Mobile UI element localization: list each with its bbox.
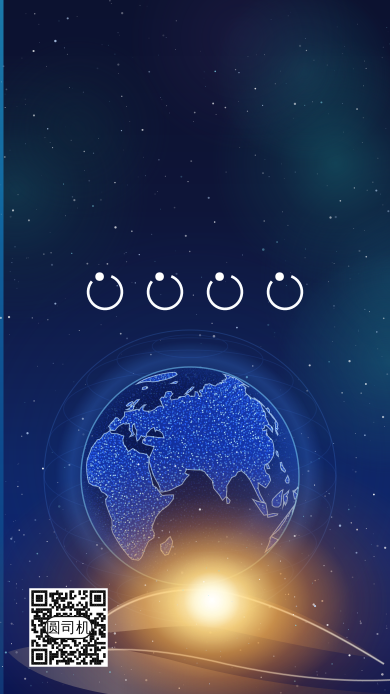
button[interactable]: Loading (86, 273, 123, 310)
staticText: 圆司机 (46, 618, 91, 636)
button[interactable]: Loading (206, 273, 243, 310)
button[interactable]: Loading (266, 273, 303, 310)
button[interactable]: Loading (146, 273, 183, 310)
button[interactable]: Scan QR code (29, 588, 108, 667)
